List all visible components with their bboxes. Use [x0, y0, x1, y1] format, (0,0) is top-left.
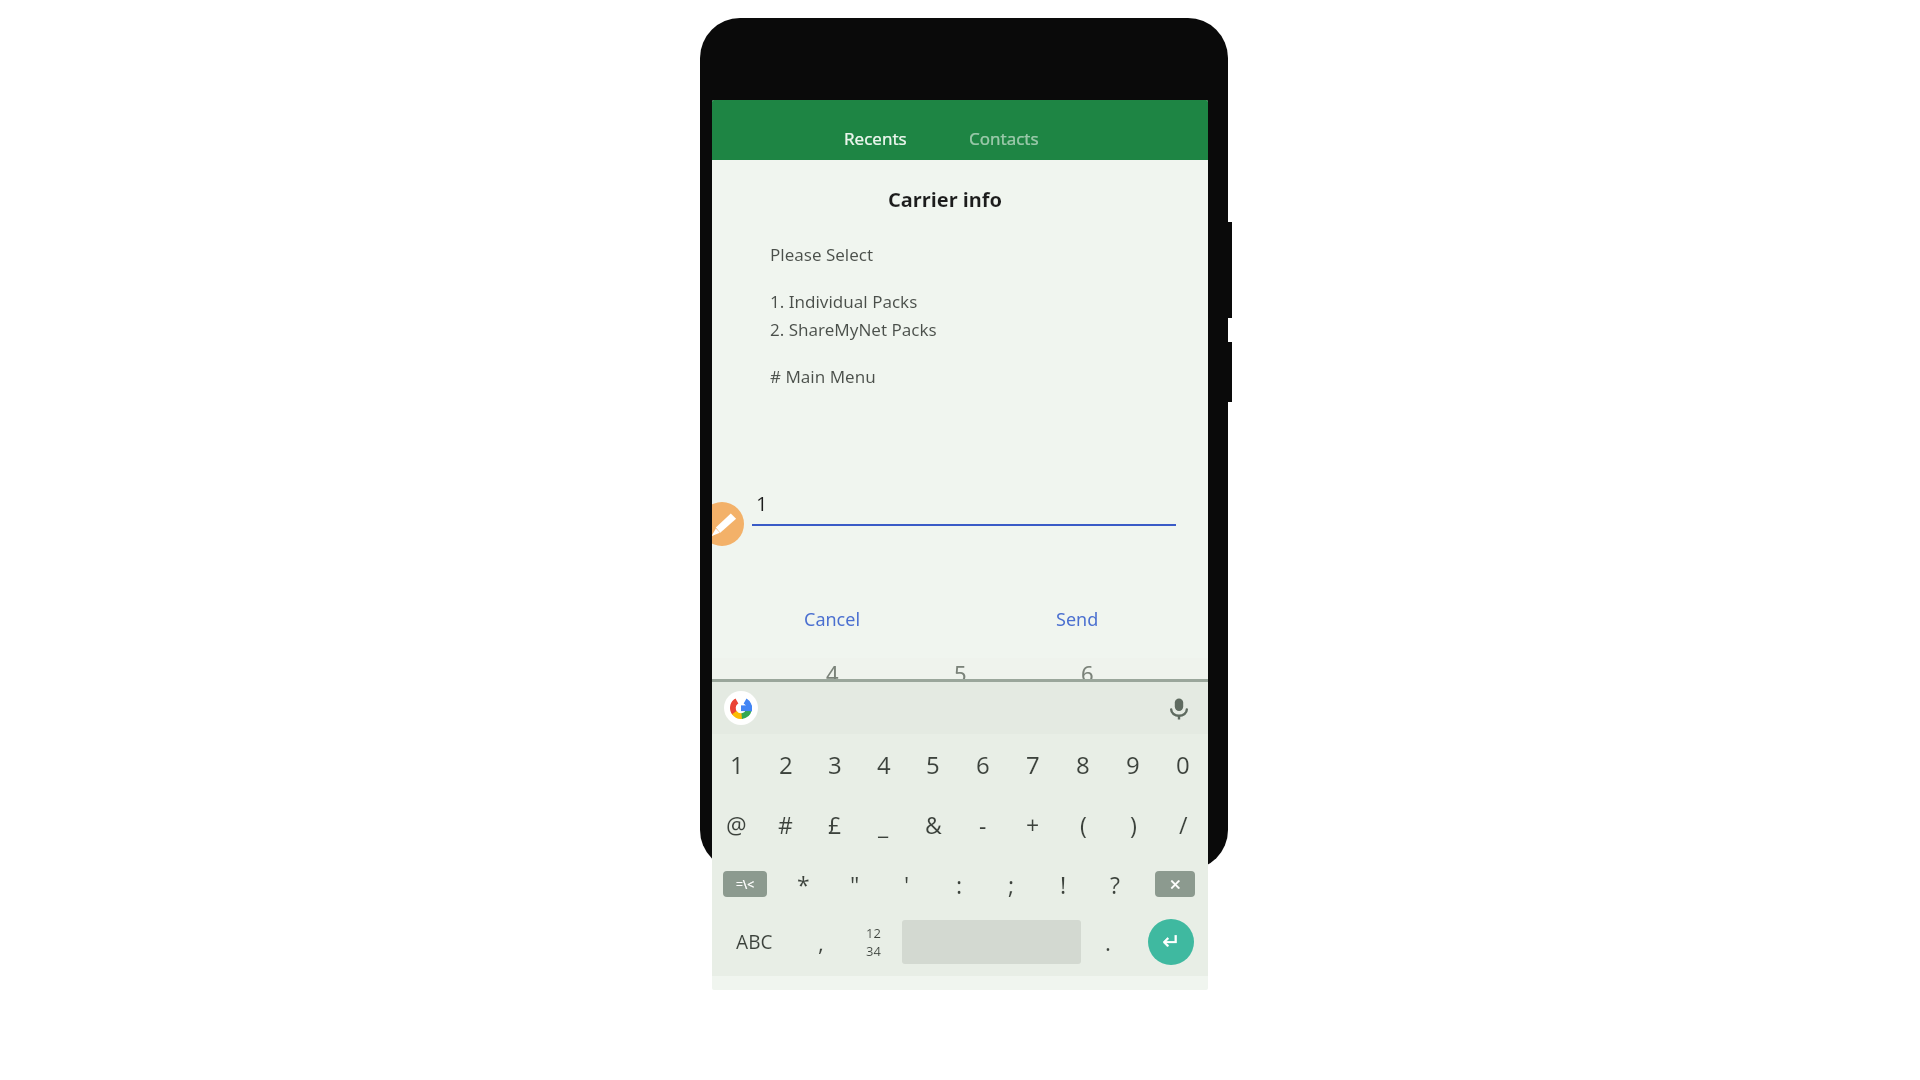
button[interactable]: & — [908, 794, 958, 854]
staticText: " — [850, 869, 860, 900]
button[interactable]: Google — [724, 691, 758, 725]
staticText: Carrier info — [712, 186, 1178, 213]
staticText: , — [818, 927, 824, 957]
staticText: ) — [1130, 809, 1137, 840]
button[interactable]: ' — [881, 854, 933, 914]
button[interactable]: 1 — [712, 734, 761, 794]
staticText: 0 — [1176, 748, 1190, 781]
button[interactable]: * — [778, 854, 829, 914]
staticText: 7 — [1026, 748, 1040, 781]
staticText: Cancel — [804, 607, 861, 632]
button[interactable]: 1 — [752, 490, 1208, 550]
button[interactable]: 9 — [1108, 734, 1158, 794]
staticText: @ — [726, 809, 747, 840]
staticText: 2 — [779, 748, 793, 781]
staticText: 3 — [828, 748, 842, 781]
button[interactable]: Recents — [840, 123, 911, 154]
button[interactable]: # — [761, 794, 810, 854]
button[interactable]: 12 — [844, 914, 902, 970]
staticText: 34 — [866, 942, 881, 960]
staticText: # — [778, 809, 793, 840]
button[interactable]: - — [958, 794, 1008, 854]
button[interactable]: Send — [1042, 597, 1113, 642]
button[interactable]: 7 — [1008, 734, 1058, 794]
staticText: ' — [904, 869, 910, 900]
staticText: 5 — [954, 658, 967, 682]
staticText: 12 — [866, 924, 881, 942]
button[interactable]: 0 — [1158, 734, 1208, 794]
staticText: 6 — [1081, 658, 1094, 682]
staticText: Contacts — [969, 127, 1039, 150]
staticText: ; — [1008, 869, 1015, 900]
staticText: _ — [878, 809, 889, 840]
staticText: Send — [1056, 607, 1099, 632]
staticText: + — [1026, 809, 1040, 840]
staticText: ✕ — [1169, 876, 1182, 893]
staticText: Recents — [844, 127, 907, 150]
button[interactable]: : — [933, 854, 985, 914]
button[interactable]: ) — [1108, 794, 1158, 854]
button[interactable]: _ — [859, 794, 908, 854]
button[interactable]: / — [1158, 794, 1208, 854]
staticText: - — [979, 809, 987, 840]
button[interactable]: ? — [1089, 854, 1141, 914]
staticText: & — [925, 809, 942, 840]
button[interactable]: 3 — [810, 734, 859, 794]
staticText: 4 — [826, 658, 839, 682]
staticText: ↵ — [1162, 929, 1181, 955]
button[interactable]: 5 — [908, 734, 958, 794]
staticText: # Main Menu — [770, 365, 876, 388]
staticText: ! — [1060, 869, 1067, 900]
staticText: / — [1179, 809, 1188, 840]
staticText: : — [956, 869, 963, 900]
staticText: 5 — [926, 748, 940, 781]
button[interactable]: " — [829, 854, 881, 914]
button[interactable]: ( — [1058, 794, 1108, 854]
button[interactable]: =\< — [712, 854, 778, 914]
button[interactable]: + — [1008, 794, 1058, 854]
staticText: 6 — [976, 748, 990, 781]
button[interactable]: Voice input — [1164, 693, 1194, 723]
button[interactable]: @ — [712, 794, 761, 854]
button[interactable]: Contacts — [965, 123, 1043, 154]
staticText: * — [797, 869, 810, 900]
button[interactable]: £ — [810, 794, 859, 854]
button[interactable]: , — [797, 914, 844, 970]
button[interactable]: 8 — [1058, 734, 1108, 794]
button[interactable]: Enter — [1148, 919, 1194, 965]
button[interactable]: ; — [985, 854, 1037, 914]
staticText: £ — [828, 809, 842, 840]
staticText: ? — [1110, 869, 1120, 900]
button[interactable]: 4 — [859, 734, 908, 794]
staticText: Please Select — [770, 243, 874, 266]
staticText: . — [1105, 927, 1111, 957]
button[interactable]: 2 — [761, 734, 810, 794]
button[interactable]: . — [1081, 914, 1134, 970]
button[interactable]: Cancel — [790, 597, 875, 642]
staticText: 1 — [730, 748, 744, 781]
button[interactable]: ! — [1037, 854, 1089, 914]
button[interactable]: ABC — [712, 914, 797, 970]
staticText: ABC — [736, 929, 773, 955]
staticText: 2. ShareMyNet Packs — [770, 318, 937, 341]
button[interactable]: 6 — [958, 734, 1008, 794]
staticText: ( — [1080, 809, 1087, 840]
staticText: 9 — [1126, 748, 1140, 781]
staticText: =\< — [736, 876, 755, 892]
button[interactable]: Text selection handle — [712, 502, 744, 546]
button[interactable]: Backspace — [1141, 854, 1208, 914]
staticText: 4 — [877, 748, 891, 781]
staticText: 1. Individual Packs — [770, 290, 918, 313]
staticText: 8 — [1076, 748, 1090, 781]
staticText: 1 — [756, 490, 768, 517]
